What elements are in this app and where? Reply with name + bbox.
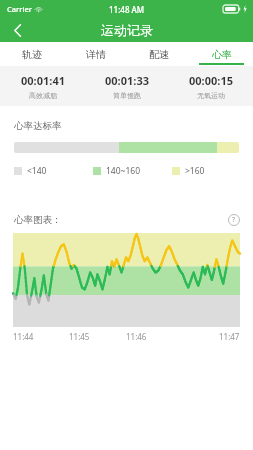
staticText: 140~160 — [106, 165, 141, 177]
button[interactable]: 配速 — [127, 42, 190, 66]
staticText: 简单慢跑 — [113, 91, 141, 100]
staticText: 心率 — [212, 48, 232, 61]
button[interactable]: 轨迹 — [0, 42, 64, 66]
button[interactable]: Back — [0, 18, 34, 42]
staticText: <140 — [27, 165, 47, 177]
staticText: 轨迹 — [22, 48, 42, 61]
button[interactable]: Help — [227, 213, 241, 227]
staticText: 11:48 AM — [109, 4, 145, 15]
staticText: 11:46 — [126, 331, 147, 342]
staticText: Carrier — [7, 4, 32, 14]
staticText: 00:00:15 — [189, 73, 233, 88]
staticText: >160 — [185, 165, 205, 177]
staticText: 配速 — [149, 48, 169, 61]
staticText: 11:45 — [69, 331, 90, 342]
staticText: 00:01:33 — [105, 73, 149, 88]
staticText: 详情 — [86, 48, 106, 61]
staticText: 00:01:41 — [21, 73, 65, 88]
button[interactable]: 心率 — [190, 42, 253, 66]
staticText: 高效减脂 — [29, 91, 57, 100]
staticText: 11:44 — [13, 331, 34, 342]
staticText: 运动记录 — [101, 22, 153, 38]
staticText: 无氧运动 — [197, 91, 225, 100]
button[interactable]: 详情 — [64, 42, 127, 66]
staticText: 心率图表： — [14, 214, 62, 226]
staticText: ? — [232, 215, 236, 225]
staticText: 11:47 — [219, 331, 240, 342]
staticText: 心率达标率 — [14, 120, 62, 132]
